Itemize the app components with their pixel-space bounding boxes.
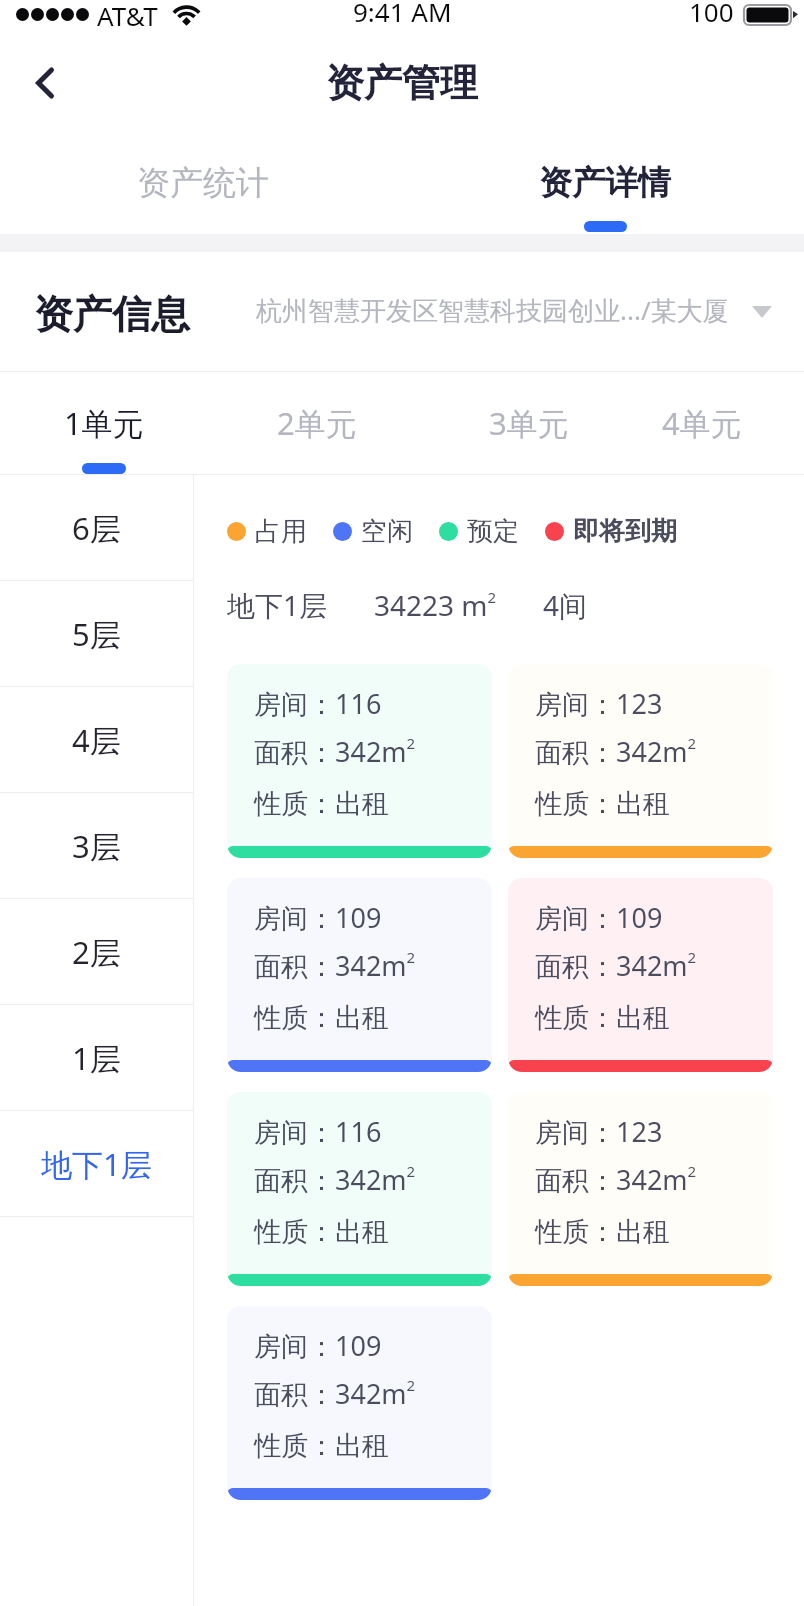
staticText: 性质：出租 — [254, 1215, 389, 1249]
staticText: 性质：出租 — [535, 1215, 670, 1249]
button[interactable]: Back — [0, 44, 86, 130]
button[interactable]: 1单元 — [0, 372, 201, 474]
staticText: 面积：342m2 — [254, 733, 416, 770]
staticText: 4间 — [543, 586, 588, 624]
staticText: 性质：出租 — [254, 787, 389, 821]
staticText: 34223 m2 — [374, 586, 497, 624]
button[interactable]: 3层 — [0, 793, 193, 898]
staticText: 地下1层 — [227, 586, 328, 624]
button[interactable]: 资产统计 — [0, 130, 402, 234]
staticText: 2层 — [72, 931, 121, 973]
staticText: 100 — [689, 0, 734, 29]
staticText: 空闲 — [361, 515, 413, 548]
staticText: 房间：123 — [535, 1113, 663, 1150]
staticText: 面积：342m2 — [535, 733, 697, 770]
staticText: 4层 — [72, 719, 121, 761]
staticText: 房间：123 — [535, 685, 663, 722]
staticText: 面积：342m2 — [254, 1375, 416, 1412]
staticText: 资产详情 — [539, 162, 671, 204]
staticText: 4单元 — [662, 402, 742, 444]
button[interactable]: 1层 — [0, 1005, 193, 1110]
staticText: 面积：342m2 — [254, 1161, 416, 1198]
staticText: 即将到期 — [573, 515, 677, 548]
button[interactable]: 地下1层 — [0, 1111, 193, 1216]
staticText: 性质：出租 — [535, 787, 670, 821]
button[interactable]: 房间：116 — [227, 1092, 492, 1286]
staticText: 房间：109 — [535, 899, 663, 936]
staticText: 3单元 — [489, 402, 569, 444]
button[interactable]: 房间：109 — [227, 878, 492, 1072]
staticText: 1单元 — [64, 402, 144, 444]
button[interactable]: 资产信息 — [0, 252, 804, 371]
staticText: 性质：出租 — [254, 1001, 389, 1035]
button[interactable]: 6层 — [0, 475, 193, 580]
staticText: AT&T — [97, 0, 158, 33]
button[interactable]: 房间：109 — [508, 878, 773, 1072]
staticText: 3层 — [72, 825, 121, 867]
staticText: 性质：出租 — [254, 1429, 389, 1463]
staticText: 占用 — [255, 515, 307, 548]
staticText: 房间：109 — [254, 899, 382, 936]
staticText: 面积：342m2 — [535, 1161, 697, 1198]
button[interactable]: 3单元 — [402, 372, 603, 474]
button[interactable]: 资产详情 — [402, 130, 804, 234]
staticText: 资产信息 — [34, 290, 190, 339]
staticText: 杭州智慧开发区智慧科技园创业.../某大厦 — [256, 292, 729, 328]
staticText: 6层 — [72, 507, 121, 549]
button[interactable]: 5层 — [0, 581, 193, 686]
staticText: 资产管理 — [326, 59, 478, 107]
button[interactable]: 4单元 — [603, 372, 804, 474]
staticText: 面积：342m2 — [254, 947, 416, 984]
button[interactable]: 房间：123 — [508, 1092, 773, 1286]
staticText: 房间：109 — [254, 1327, 382, 1364]
staticText: 9:41 AM — [353, 0, 452, 29]
staticText: 房间：116 — [254, 1113, 382, 1150]
button[interactable]: 2单元 — [201, 372, 402, 474]
staticText: 地下1层 — [41, 1143, 152, 1185]
button[interactable]: 房间：123 — [508, 664, 773, 858]
button[interactable]: 房间：116 — [227, 664, 492, 858]
staticText: 5层 — [72, 613, 121, 655]
staticText: 2单元 — [277, 402, 357, 444]
button[interactable]: 房间：109 — [227, 1306, 492, 1500]
staticText: 资产统计 — [137, 162, 269, 204]
staticText: 面积：342m2 — [535, 947, 697, 984]
button[interactable]: 2层 — [0, 899, 193, 1004]
staticText: 性质：出租 — [535, 1001, 670, 1035]
button[interactable]: 4层 — [0, 687, 193, 792]
staticText: 1层 — [72, 1037, 121, 1079]
staticText: 房间：116 — [254, 685, 382, 722]
staticText: 预定 — [467, 515, 519, 548]
